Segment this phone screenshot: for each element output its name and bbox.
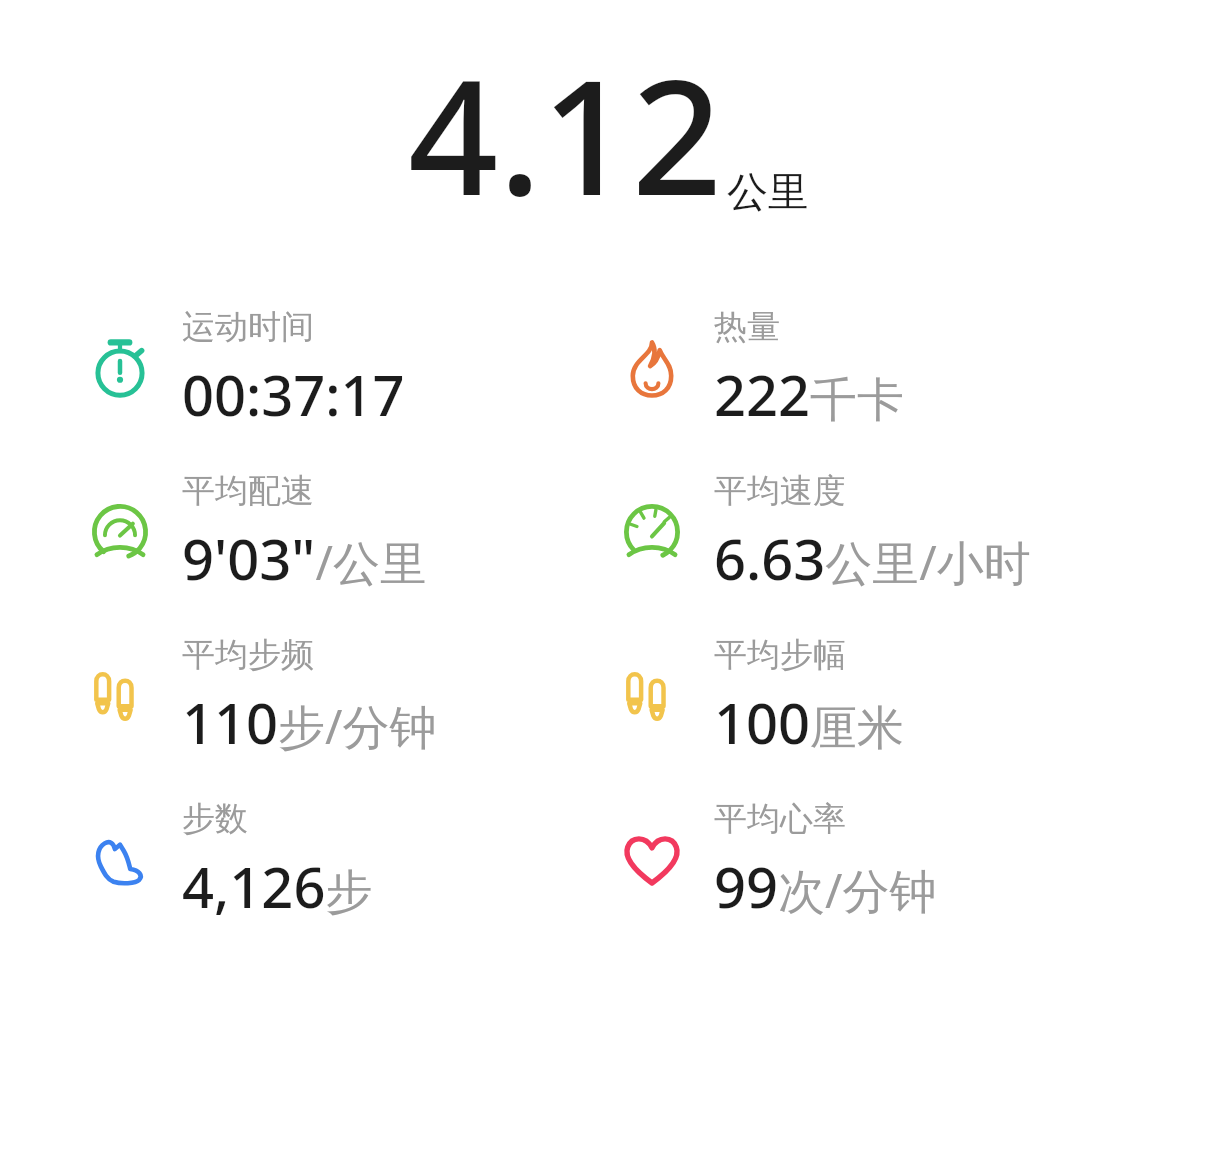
other: Steps	[88, 828, 152, 892]
staticText: 9'03"/公里	[182, 520, 427, 596]
button[interactable]: Steps	[0, 798, 608, 924]
staticText: 步数	[182, 798, 248, 840]
staticText: 平均步频	[182, 634, 314, 676]
staticText: 平均配速	[182, 470, 314, 512]
staticText: 平均步幅	[714, 634, 846, 676]
other: Calories	[620, 336, 684, 400]
staticText: 100厘米	[714, 684, 905, 760]
staticText: 00:37:17	[182, 356, 405, 432]
staticText: 平均速度	[714, 470, 846, 512]
staticText: 平均心率	[714, 798, 846, 840]
other: Average heart rate	[620, 828, 684, 892]
button[interactable]: Average cadence	[0, 634, 608, 760]
other: Average stride	[620, 664, 684, 728]
button[interactable]: Calories	[608, 306, 1216, 432]
staticText: 4,126步	[182, 848, 373, 924]
button[interactable]: Average stride	[608, 634, 1216, 760]
staticText: 99次/分钟	[714, 848, 937, 924]
staticText: 运动时间	[182, 306, 314, 348]
other: Average speed	[620, 500, 684, 564]
staticText: 110步/分钟	[182, 684, 437, 760]
button[interactable]: Duration	[0, 306, 608, 432]
button[interactable]: Average speed	[608, 470, 1216, 596]
button[interactable]: Average heart rate	[608, 798, 1216, 924]
staticText: 公里	[727, 167, 809, 219]
staticText: 4.12	[408, 26, 723, 241]
other: Average pace	[88, 500, 152, 564]
button[interactable]: Average pace	[0, 470, 608, 596]
staticText: 6.63公里/小时	[714, 520, 1031, 596]
other: Average cadence	[88, 664, 152, 728]
staticText: 热量	[714, 306, 780, 348]
staticText: 222千卡	[714, 356, 905, 432]
other: Duration	[88, 336, 152, 400]
